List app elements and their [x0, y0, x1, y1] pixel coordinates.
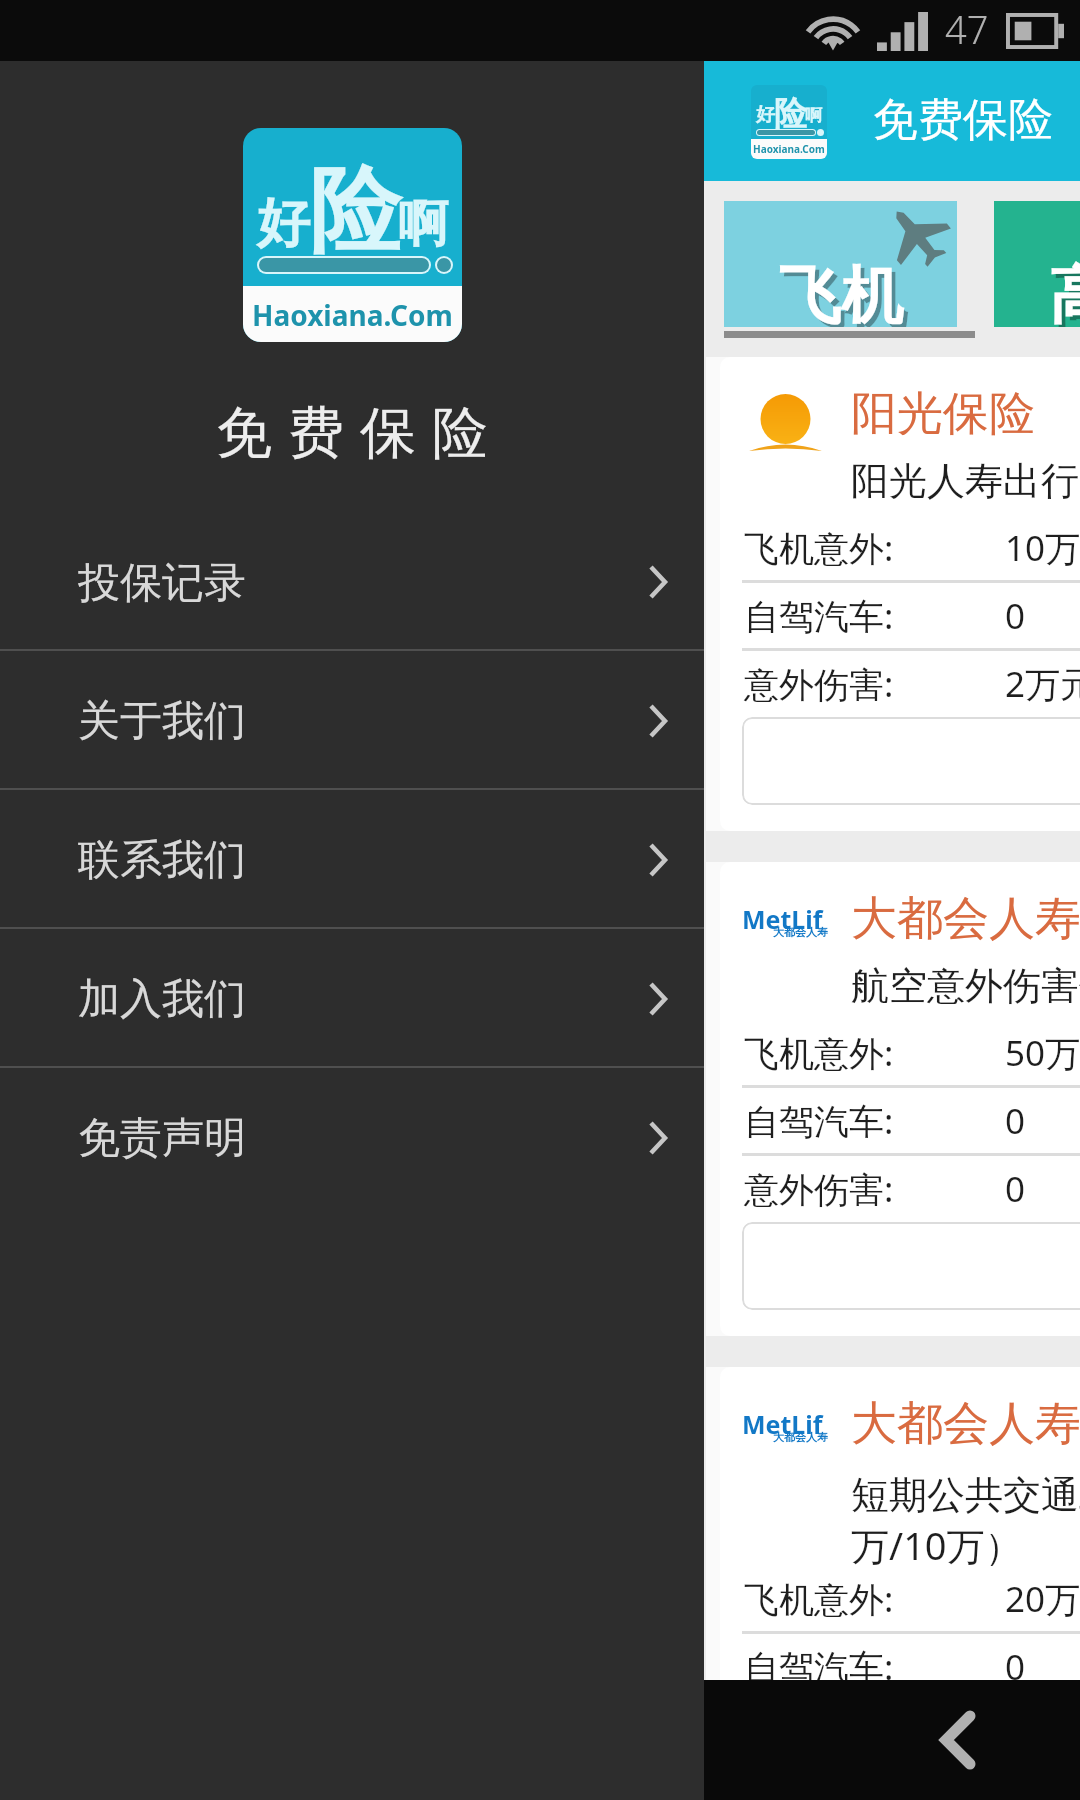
- staticText: 高铁: [1049, 257, 1080, 327]
- button[interactable]: 关于我们: [0, 651, 704, 788]
- staticText: 免责声明: [78, 1112, 246, 1165]
- staticText: 0: [1005, 1097, 1026, 1145]
- staticText: 大都会人寿: [773, 1430, 828, 1444]
- staticText: 10万: [1005, 524, 1080, 572]
- staticText: 47: [945, 3, 989, 55]
- staticText: 险: [309, 153, 401, 269]
- button[interactable]: MetLife: [720, 862, 1080, 1336]
- staticText: 联系我们: [78, 834, 246, 887]
- staticText: 免费保险: [873, 92, 1053, 149]
- button[interactable]: 联系我们: [0, 790, 704, 927]
- staticText: 阳光人寿出行无忧险: [851, 457, 1080, 505]
- staticText: 飞机: [783, 261, 907, 327]
- button[interactable]: 加入我们: [0, 929, 704, 1066]
- staticText: 短期公共交通工具（20: [851, 1467, 1080, 1519]
- button[interactable]: 高铁: [994, 201, 1080, 327]
- button[interactable]: MetLife: [720, 1367, 1080, 1800]
- staticText: 险: [774, 93, 807, 135]
- button[interactable]: 阳光保险: [720, 357, 1080, 831]
- staticText: 飞机意外:: [744, 1029, 894, 1077]
- button[interactable]: 飞机: [724, 201, 957, 327]
- staticText: 飞机意外:: [744, 1575, 894, 1623]
- staticText: 0: [1005, 1643, 1026, 1691]
- staticText: 好: [756, 103, 775, 127]
- staticText: 好: [257, 190, 310, 257]
- staticText: 意外伤害:: [744, 660, 894, 708]
- staticText: 航空意外伤害保险: [851, 962, 1080, 1010]
- staticText: 高铁: [1053, 261, 1080, 327]
- staticText: 万/10万）: [851, 1519, 1023, 1566]
- button[interactable]: 免责声明: [0, 1068, 704, 1205]
- staticText: 自驾汽车:: [744, 1097, 894, 1145]
- staticText: 50万: [1005, 1029, 1080, 1077]
- staticText: 啊: [805, 105, 822, 126]
- staticText: MetLife: [742, 902, 830, 930]
- staticText: 意外伤害:: [744, 1165, 894, 1213]
- staticText: 自驾汽车:: [744, 592, 894, 640]
- staticText: 关于我们: [78, 695, 246, 748]
- staticText: 20万: [1005, 1575, 1080, 1623]
- staticText: 啊: [398, 193, 448, 256]
- staticText: Haoxiana.Com: [753, 142, 825, 156]
- staticText: 阳光保险: [851, 385, 1035, 443]
- staticText: MetLife: [742, 1407, 830, 1435]
- button[interactable]: 好: [704, 61, 1080, 181]
- staticText: 0: [1005, 592, 1026, 640]
- staticText: 2万元: [1005, 660, 1080, 708]
- staticText: 免费保险: [16, 398, 704, 469]
- staticText: Haoxiana.Com: [252, 296, 453, 334]
- staticText: 加入我们: [78, 973, 246, 1026]
- staticText: 大都会人寿: [851, 1395, 1080, 1453]
- staticText: 投保记录: [78, 557, 246, 610]
- button[interactable]: Back: [898, 1680, 1018, 1800]
- staticText: 飞机意外:: [744, 524, 894, 572]
- staticText: 0: [1005, 1165, 1026, 1213]
- staticText: 飞机: [779, 257, 903, 327]
- staticText: 自驾汽车:: [744, 1643, 894, 1691]
- staticText: 大都会人寿: [773, 925, 828, 939]
- button[interactable]: 投保记录: [0, 513, 704, 649]
- staticText: 大都会人寿: [851, 890, 1080, 948]
